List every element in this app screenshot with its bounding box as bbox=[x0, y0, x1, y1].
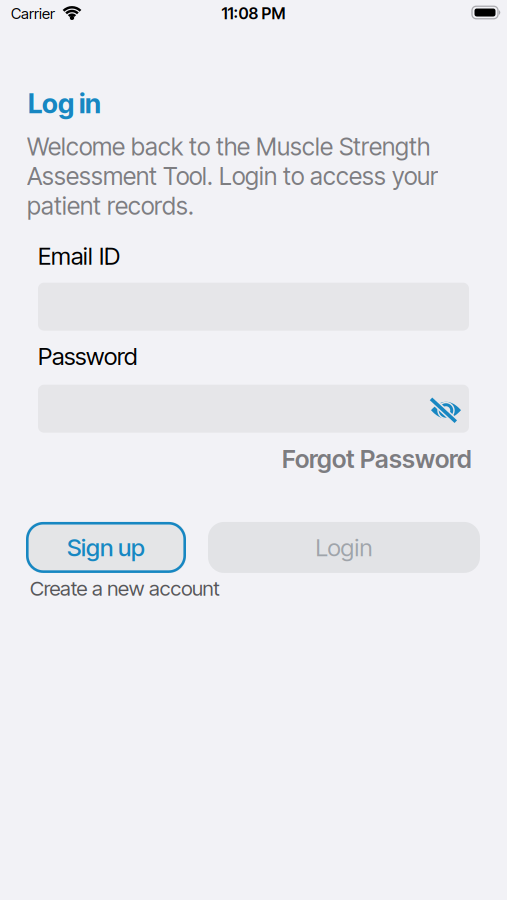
button[interactable]: Sign up bbox=[26, 522, 186, 573]
button[interactable]: Forgot Password bbox=[279, 444, 469, 474]
staticText: Welcome back to the Muscle Strength Asse… bbox=[27, 132, 438, 221]
button[interactable]: Password bbox=[38, 385, 469, 433]
staticText: Forgot Password bbox=[282, 444, 472, 474]
button[interactable]: Show password bbox=[430, 398, 462, 424]
staticText: Email ID bbox=[38, 242, 120, 271]
staticText: Login bbox=[315, 533, 372, 562]
staticText: 11:08 PM bbox=[221, 4, 285, 23]
staticText: Sign up bbox=[67, 533, 145, 562]
staticText: Carrier bbox=[11, 4, 55, 22]
staticText: Create a new account bbox=[30, 576, 219, 601]
button[interactable]: Login bbox=[208, 522, 480, 573]
staticText: Log in bbox=[28, 87, 101, 120]
staticText: Password bbox=[38, 342, 137, 371]
